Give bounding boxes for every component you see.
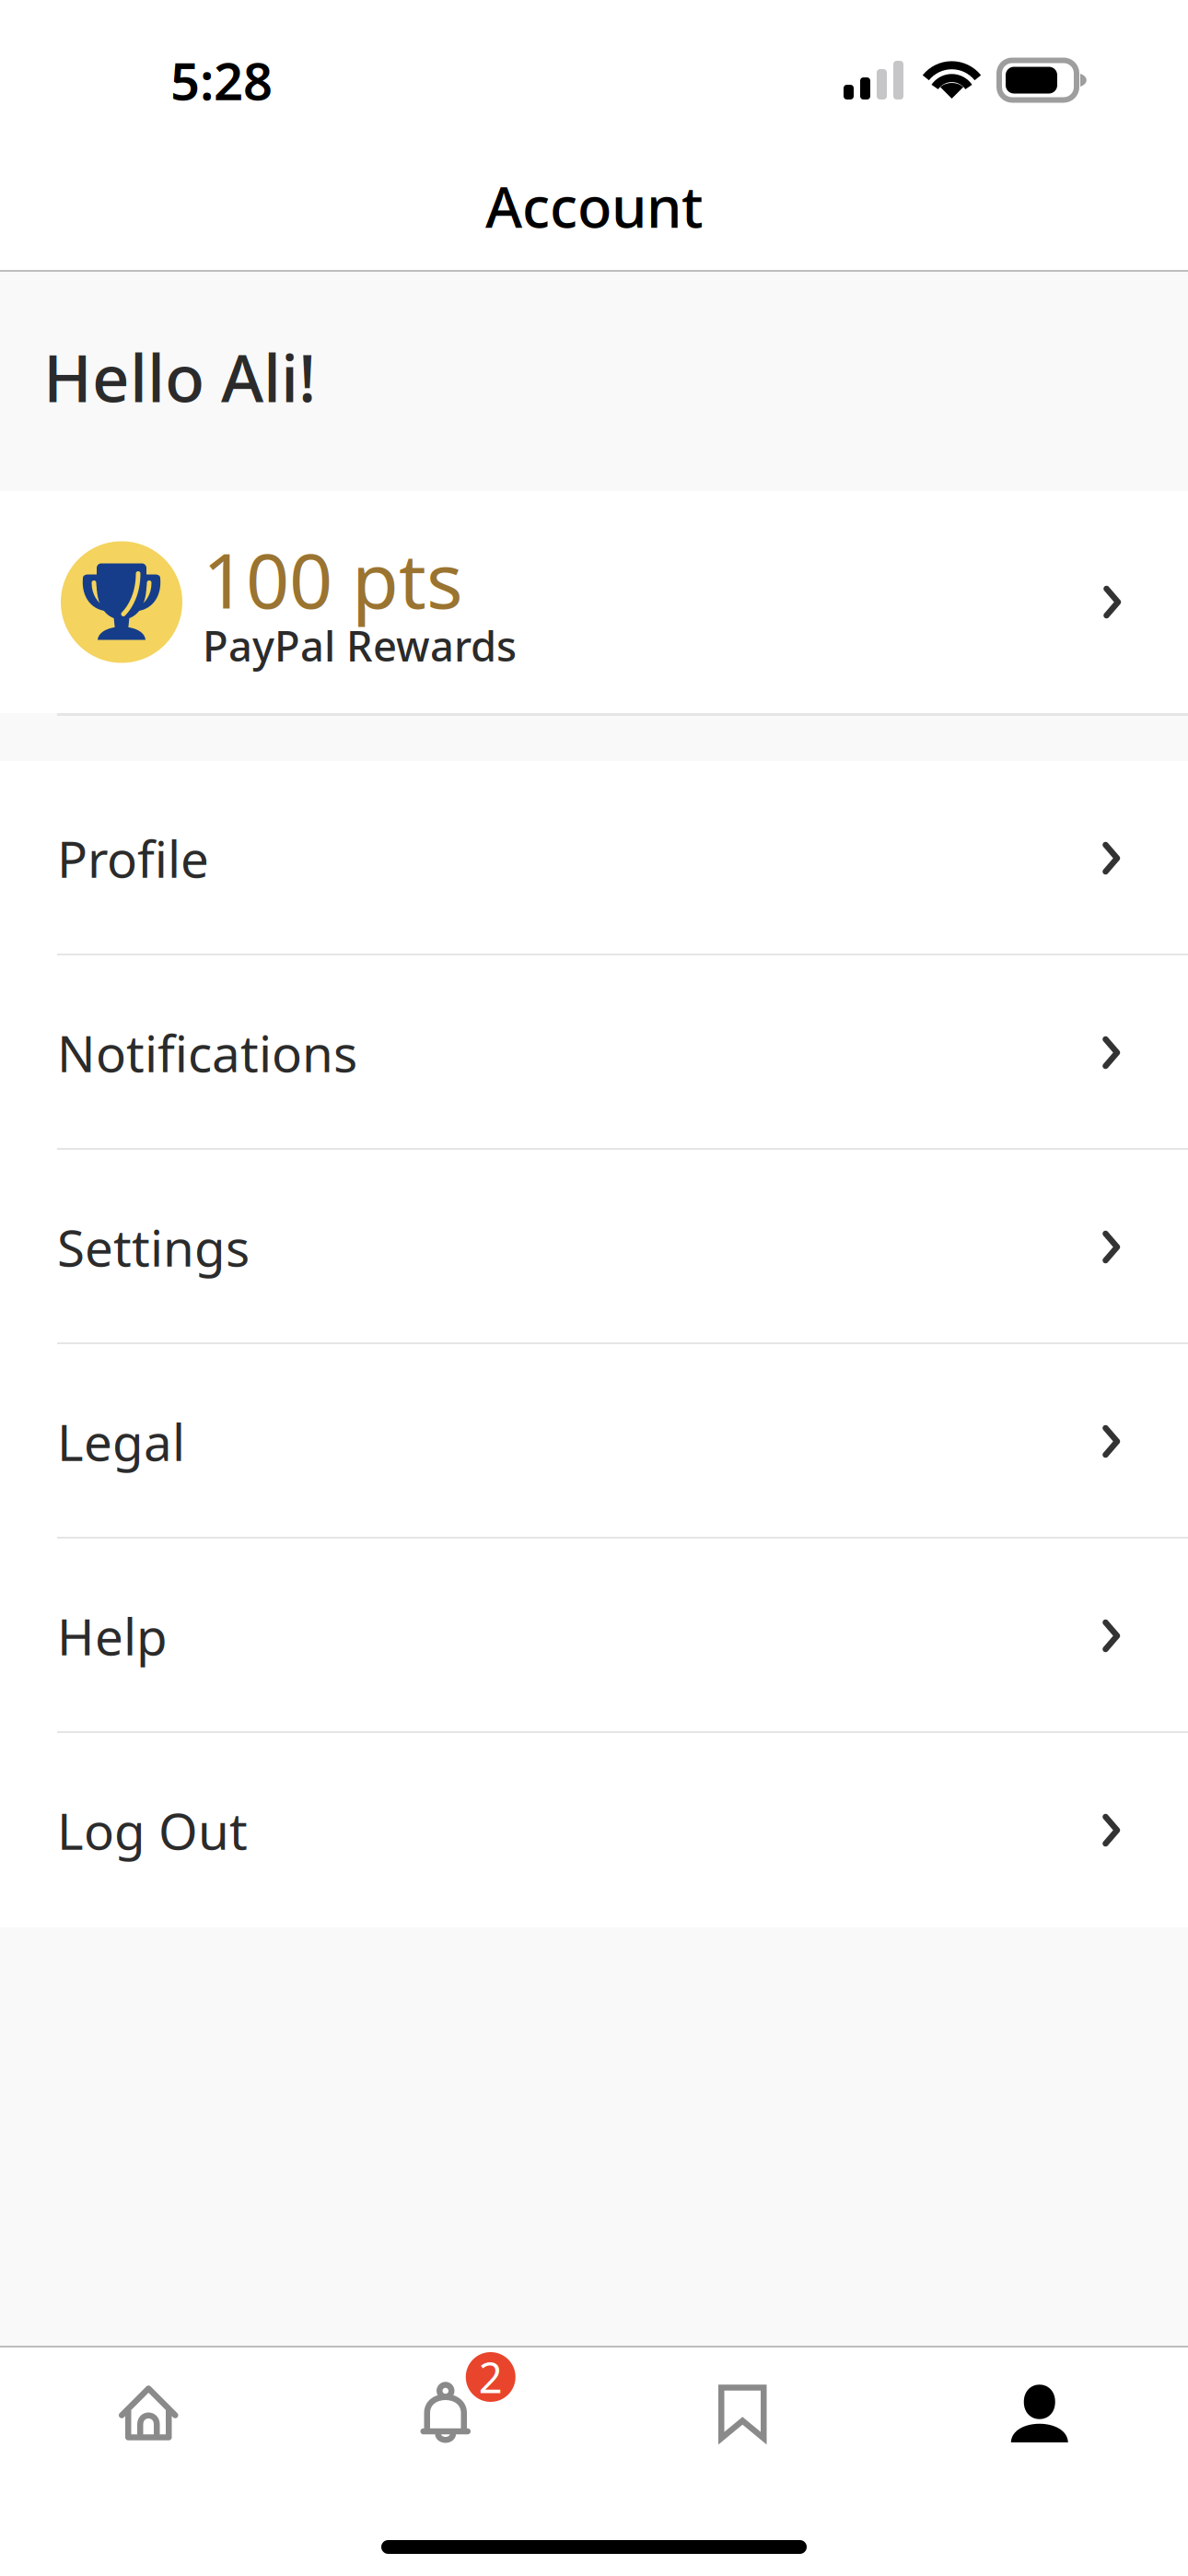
button[interactable]: Log Out: [0, 1733, 1188, 1927]
staticText: Account: [485, 168, 703, 243]
staticText: Legal: [57, 1408, 185, 1475]
staticText: PayPal Rewards: [203, 618, 517, 673]
button[interactable]: Notifications: [297, 2378, 594, 2448]
staticText: 100 pts: [203, 528, 463, 630]
staticText: Log Out: [57, 1797, 248, 1864]
staticText: Notifications: [57, 1019, 357, 1086]
staticText: Profile: [57, 825, 209, 892]
staticText: Settings: [57, 1214, 250, 1280]
staticText: Hello Ali!: [43, 334, 316, 420]
button[interactable]: Home: [0, 2378, 297, 2448]
staticText: Help: [57, 1602, 168, 1669]
staticText: 2: [479, 2349, 503, 2405]
button[interactable]: Legal: [0, 1344, 1188, 1539]
button[interactable]: Saved: [594, 2378, 891, 2448]
button[interactable]: Settings: [0, 1150, 1188, 1344]
button[interactable]: Help: [0, 1539, 1188, 1733]
button[interactable]: Notifications: [0, 955, 1188, 1150]
staticText: 5:28: [170, 46, 273, 114]
button[interactable]: 100 pts: [0, 491, 1188, 713]
button[interactable]: Profile: [0, 761, 1188, 955]
button[interactable]: Account: [891, 2378, 1188, 2448]
